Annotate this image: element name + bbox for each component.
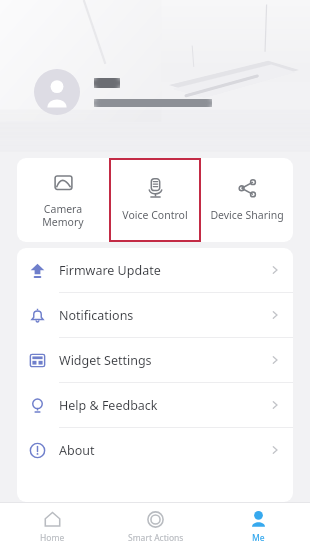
staticText: Notifications bbox=[59, 307, 268, 324]
button[interactable]: Firmware Update bbox=[17, 248, 293, 292]
button[interactable]: Camera Memory bbox=[17, 158, 109, 242]
button[interactable]: Help & Feedback bbox=[17, 383, 293, 427]
button[interactable]: Home bbox=[0, 503, 104, 550]
staticText: Widget Settings bbox=[59, 352, 268, 369]
staticText: Device Sharing bbox=[210, 208, 284, 222]
staticText: Me bbox=[252, 532, 265, 544]
staticText: Smart Actions bbox=[128, 532, 184, 544]
staticText: Help & Feedback bbox=[59, 397, 268, 414]
button[interactable]: Device Sharing bbox=[201, 158, 293, 242]
staticText: Home bbox=[40, 532, 65, 544]
button[interactable]: Widget Settings bbox=[17, 338, 293, 382]
button[interactable]: Me bbox=[207, 503, 310, 550]
staticText: Camera Memory bbox=[42, 202, 84, 229]
button[interactable]: Profile photo bbox=[34, 69, 80, 115]
staticText: About bbox=[59, 442, 268, 459]
button[interactable]: About bbox=[17, 428, 293, 472]
button[interactable]: Smart Actions bbox=[104, 503, 207, 550]
button[interactable]: Voice Control bbox=[109, 158, 201, 242]
staticText: Firmware Update bbox=[59, 262, 268, 279]
staticText: Voice Control bbox=[122, 208, 188, 222]
button[interactable]: Notifications bbox=[17, 293, 293, 337]
